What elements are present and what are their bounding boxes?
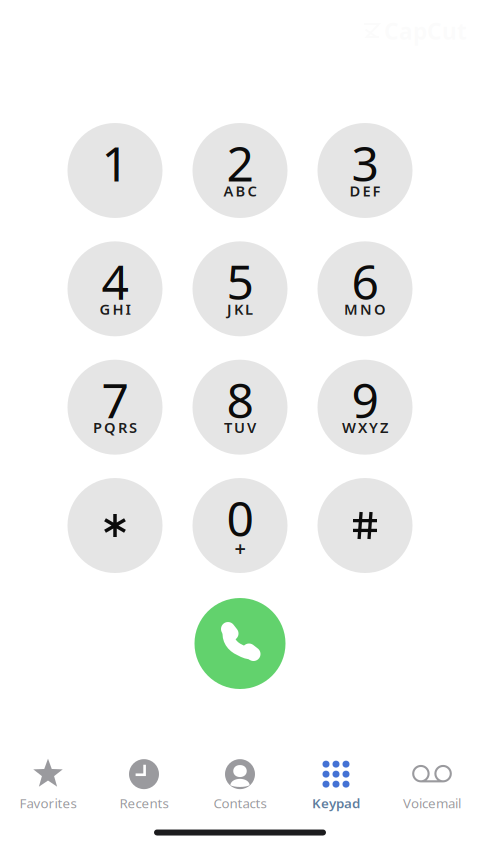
staticText: 6	[351, 249, 378, 313]
staticText: 3	[351, 131, 378, 195]
staticText: Voicemail	[403, 794, 461, 812]
button[interactable]: 9	[317, 360, 412, 455]
staticText: 2	[226, 131, 253, 195]
staticText: 8	[226, 368, 253, 431]
staticText: A B C	[223, 181, 256, 200]
staticText: Favorites	[19, 794, 76, 812]
button[interactable]: Call	[194, 598, 285, 689]
button[interactable]: 1	[67, 123, 162, 218]
staticText: +	[234, 535, 245, 562]
button[interactable]: pound	[317, 478, 412, 573]
button[interactable]: 0	[192, 478, 287, 573]
button[interactable]: 3	[317, 123, 412, 218]
staticText: Contacts	[213, 794, 266, 812]
button[interactable]: 7	[67, 360, 162, 455]
button[interactable]: 5	[192, 241, 287, 336]
staticText: 1	[101, 131, 128, 195]
staticText: 7	[101, 368, 128, 431]
button[interactable]: 6	[317, 241, 412, 336]
staticText: G H I	[99, 299, 130, 319]
staticText: P Q R S	[93, 418, 137, 437]
staticText: 4	[101, 249, 128, 313]
button[interactable]: star	[67, 478, 162, 573]
staticText: Keypad	[312, 794, 360, 812]
staticText: D E F	[349, 181, 380, 200]
staticText: M N O	[344, 299, 386, 319]
staticText: Recents	[119, 794, 168, 812]
button[interactable]: 2	[192, 123, 287, 218]
staticText: 9	[351, 368, 378, 431]
button[interactable]: 4	[67, 241, 162, 336]
staticText: J K L	[227, 299, 253, 319]
button[interactable]: Favorites	[0, 758, 96, 812]
staticText: 5	[226, 249, 253, 313]
staticText: W X Y Z	[342, 418, 388, 437]
staticText: 0	[226, 486, 253, 550]
staticText: T U V	[224, 418, 256, 437]
button[interactable]: Contacts	[192, 758, 288, 812]
button[interactable]: Voicemail	[384, 758, 480, 812]
button[interactable]: 8	[192, 360, 287, 455]
button[interactable]: Keypad	[288, 758, 384, 812]
button[interactable]: Recents	[96, 758, 192, 812]
